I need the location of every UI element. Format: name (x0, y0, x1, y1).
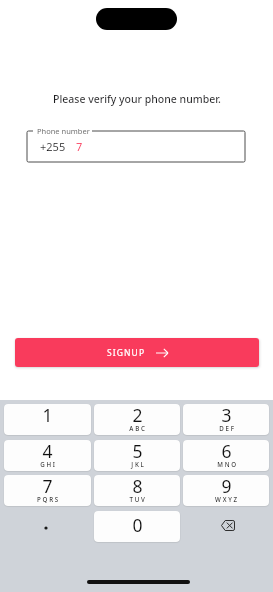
button[interactable]: 3 (183, 404, 269, 435)
button[interactable]: 8 (94, 475, 180, 506)
staticText: Please verify your phone number. (53, 92, 221, 106)
staticText: 1 (42, 404, 53, 427)
button[interactable]: 2 (94, 404, 180, 435)
button[interactable]: 5 (94, 440, 180, 471)
staticText: 5 (132, 440, 143, 463)
staticText: WXYZ (215, 495, 239, 503)
staticText: SIGNUP (107, 347, 146, 359)
button[interactable]: 4 (4, 440, 91, 471)
staticText: ABC (129, 424, 147, 432)
button[interactable]: 9 (183, 475, 269, 506)
button[interactable] (4, 511, 91, 542)
button[interactable]: Backspace (183, 511, 269, 542)
staticText: 9 (221, 475, 232, 498)
staticText: DEF (219, 424, 236, 432)
staticText: TUV (129, 495, 147, 503)
button[interactable]: 6 (183, 440, 269, 471)
staticText: JKL (131, 460, 146, 468)
staticText: 3 (221, 404, 232, 427)
staticText: 0 (132, 513, 143, 537)
staticText: 6 (221, 440, 232, 463)
staticText: 4 (42, 440, 53, 463)
button[interactable]: 7 (4, 475, 91, 506)
staticText: MNO (217, 460, 238, 468)
staticText: 7 (76, 139, 83, 154)
staticText: Phone number (37, 126, 90, 136)
staticText: PQRS (37, 495, 60, 503)
button[interactable]: 0 (94, 511, 180, 542)
button[interactable]: SIGNUP (15, 338, 259, 367)
staticText: 8 (132, 475, 143, 498)
button[interactable]: 1 (4, 404, 91, 435)
staticText: +255 (40, 139, 66, 154)
staticText: 7 (42, 475, 53, 498)
staticText: 2 (132, 404, 143, 427)
staticText: GHI (40, 460, 57, 468)
